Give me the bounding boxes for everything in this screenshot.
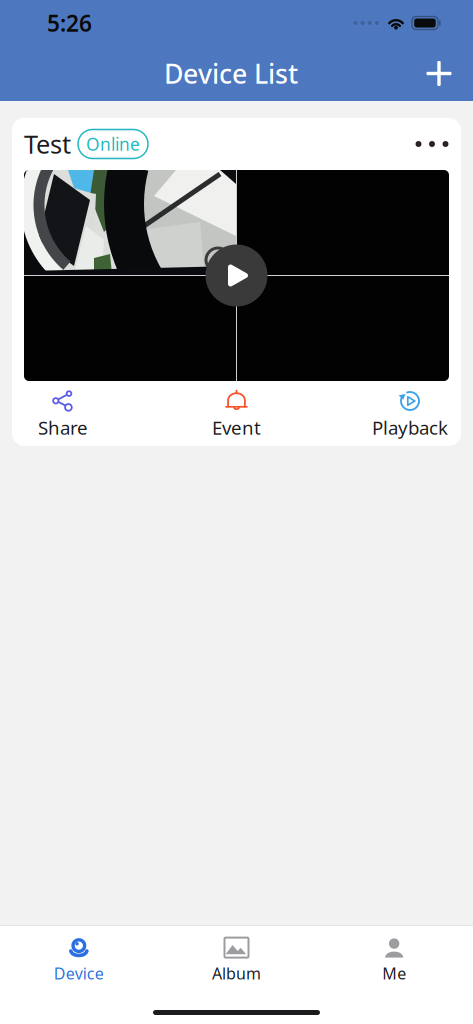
staticText: Event — [212, 415, 261, 440]
staticText: Album — [212, 963, 261, 984]
staticText: Device List — [164, 56, 298, 91]
button[interactable]: Add device — [416, 50, 462, 96]
staticText: Test — [24, 127, 71, 161]
button[interactable]: Playback — [359, 383, 461, 446]
button[interactable]: Device — [0, 932, 158, 988]
button[interactable]: Album — [158, 932, 315, 988]
staticText: Playback — [372, 415, 448, 440]
staticText: Device — [54, 963, 104, 984]
staticText: Online — [86, 132, 140, 155]
staticText: Me — [382, 963, 406, 984]
button[interactable]: Share — [12, 383, 114, 446]
button[interactable]: Me — [315, 932, 473, 988]
staticText: 5:26 — [47, 8, 92, 38]
staticText: Share — [38, 415, 88, 440]
button[interactable]: Event — [185, 383, 287, 446]
button[interactable]: More options — [408, 128, 456, 160]
